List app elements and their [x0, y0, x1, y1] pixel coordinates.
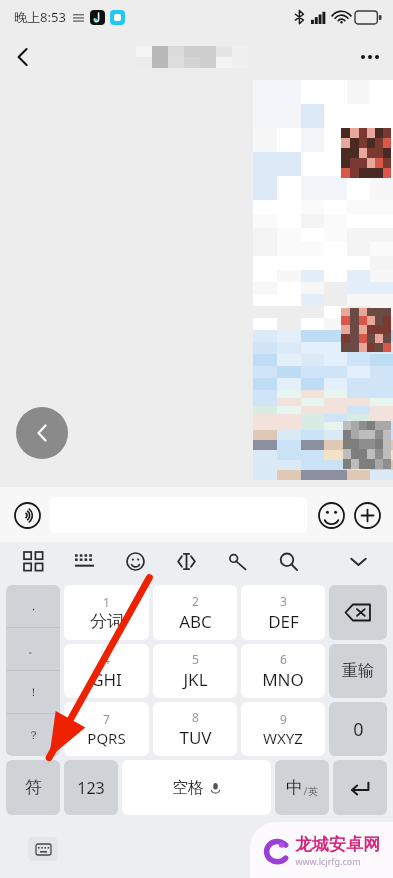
- button[interactable]: ，: [6, 585, 60, 627]
- button[interactable]: Move cursor: [171, 546, 201, 576]
- staticText: 0: [353, 717, 364, 742]
- button[interactable]: ？: [6, 714, 60, 756]
- button[interactable]: Panels: [18, 546, 48, 576]
- staticText: 。: [28, 642, 39, 656]
- staticText: 2: [192, 593, 199, 609]
- staticText: 晚上8:53: [14, 8, 66, 26]
- button[interactable]: 0: [329, 702, 387, 756]
- button[interactable]: More functions: [351, 499, 383, 531]
- button[interactable]: 4: [64, 644, 149, 698]
- button[interactable]: Back: [0, 34, 46, 80]
- staticText: 7: [103, 711, 110, 727]
- button[interactable]: Chinese English toggle: [275, 760, 329, 815]
- staticText: 123: [77, 777, 105, 799]
- button[interactable]: 2: [153, 585, 237, 640]
- staticText: ABC: [179, 610, 212, 633]
- staticText: PQRS: [87, 728, 126, 748]
- button[interactable]: Clipboard: [222, 546, 252, 576]
- button[interactable]: Voice input: [10, 498, 44, 532]
- button[interactable]: 8: [153, 702, 237, 756]
- button[interactable]: Re-enter: [329, 644, 387, 698]
- staticText: 空格: [172, 778, 204, 798]
- button[interactable]: 7: [64, 702, 149, 756]
- staticText: 重输: [342, 661, 374, 681]
- button[interactable]: 9: [241, 702, 325, 756]
- staticText: MNO: [262, 668, 304, 691]
- staticText: www.lcjrfg.com: [295, 855, 361, 867]
- button[interactable]: More options: [347, 34, 393, 80]
- button[interactable]: ！: [6, 671, 60, 713]
- staticText: 龙城安卓网: [295, 834, 380, 855]
- button[interactable]: Symbols: [6, 760, 60, 815]
- button[interactable]: Keyboard layout: [69, 546, 99, 576]
- button[interactable]: Hide keyboard: [343, 546, 373, 576]
- staticText: WXYZ: [263, 728, 303, 748]
- button[interactable]: Search: [273, 546, 303, 576]
- staticText: ！: [28, 685, 39, 699]
- button[interactable]: Backspace: [329, 585, 387, 640]
- button[interactable]: Emoji: [120, 546, 150, 576]
- staticText: 分词: [90, 611, 124, 632]
- staticText: 4: [103, 651, 110, 667]
- staticText: ？: [28, 728, 39, 742]
- staticText: DEF: [268, 610, 299, 633]
- staticText: 6: [280, 651, 287, 667]
- button[interactable]: Return to previous: [16, 407, 68, 459]
- button[interactable]: 1: [64, 585, 149, 640]
- button[interactable]: 6: [241, 644, 325, 698]
- button[interactable]: Enter: [333, 760, 387, 815]
- button[interactable]: 3: [241, 585, 325, 640]
- staticText: 5: [192, 651, 199, 667]
- staticText: 符: [25, 777, 42, 798]
- staticText: 1: [103, 594, 110, 610]
- button[interactable]: Numbers: [64, 760, 118, 815]
- staticText: 中: [286, 777, 303, 798]
- button[interactable]: 5: [153, 644, 237, 698]
- staticText: 英: [308, 785, 318, 798]
- button[interactable]: Switch keyboard: [28, 837, 58, 861]
- button[interactable]: Emoji: [315, 499, 347, 531]
- staticText: /: [303, 783, 308, 798]
- staticText: 9: [280, 711, 287, 727]
- staticText: ，: [28, 599, 39, 613]
- staticText: 8: [192, 709, 199, 725]
- staticText: JKL: [183, 668, 208, 691]
- staticText: 3: [280, 593, 287, 609]
- button[interactable]: Space: [122, 760, 271, 815]
- staticText: TUV: [179, 726, 212, 749]
- staticText: GHI: [91, 668, 122, 691]
